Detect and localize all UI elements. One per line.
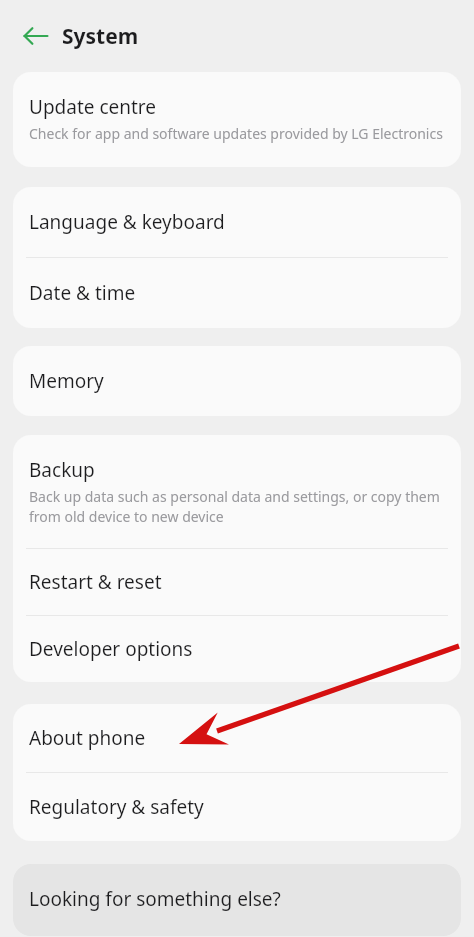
button[interactable]: Regulatory & safety (13, 773, 461, 841)
staticText: Developer options (29, 636, 193, 662)
staticText: Memory (29, 368, 104, 394)
button[interactable]: Back (14, 14, 58, 58)
staticText: Regulatory & safety (29, 794, 204, 820)
button[interactable]: Backup (13, 435, 461, 548)
button[interactable]: About phone (13, 704, 461, 772)
staticText: About phone (29, 725, 146, 751)
button[interactable]: Update centre (13, 72, 461, 167)
button[interactable]: Developer options (13, 616, 461, 682)
button[interactable]: Language & keyboard (13, 187, 461, 257)
staticText: Backup (29, 457, 95, 483)
staticText: Looking for something else? (29, 886, 281, 912)
button[interactable]: Date & time (13, 258, 461, 328)
button[interactable]: Restart & reset (13, 549, 461, 615)
button[interactable]: Looking for something else? (13, 864, 461, 936)
staticText: Check for app and software updates provi… (29, 124, 443, 143)
staticText: Back up data such as personal data and s… (29, 487, 445, 526)
staticText: Update centre (29, 94, 157, 120)
button[interactable]: Memory (13, 346, 461, 416)
staticText: System (62, 22, 139, 51)
staticText: Restart & reset (29, 569, 162, 595)
staticText: Date & time (29, 280, 136, 306)
staticText: Language & keyboard (29, 209, 225, 235)
